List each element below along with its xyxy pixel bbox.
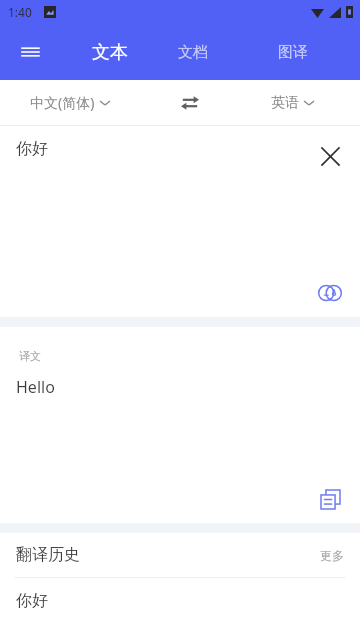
- staticText: 译文: [19, 349, 41, 363]
- staticText: 更多: [320, 548, 344, 563]
- staticText: 文本: [92, 41, 128, 64]
- staticText: Hello: [16, 376, 55, 398]
- staticText: 图译: [278, 43, 308, 62]
- button[interactable]: Copy: [312, 481, 348, 517]
- staticText: 你好: [16, 591, 48, 611]
- staticText: 中文(简体): [30, 93, 95, 112]
- button[interactable]: 英语: [271, 94, 314, 112]
- button[interactable]: 中文(简体): [30, 93, 110, 112]
- button[interactable]: Clear: [310, 136, 350, 176]
- button[interactable]: Menu: [14, 36, 46, 68]
- staticText: 1:40: [8, 4, 32, 20]
- button[interactable]: Translate: [312, 275, 348, 311]
- button[interactable]: Swap languages: [173, 86, 207, 120]
- button[interactable]: 文本: [72, 24, 148, 80]
- button[interactable]: 文档: [158, 24, 228, 80]
- staticText: 你好: [16, 139, 48, 159]
- staticText: 翻译历史: [16, 545, 80, 565]
- button[interactable]: 你好: [0, 578, 360, 623]
- staticText: 文档: [178, 43, 208, 62]
- button[interactable]: 翻译历史: [0, 533, 360, 577]
- staticText: 英语: [271, 94, 299, 112]
- button[interactable]: 图译: [258, 24, 328, 80]
